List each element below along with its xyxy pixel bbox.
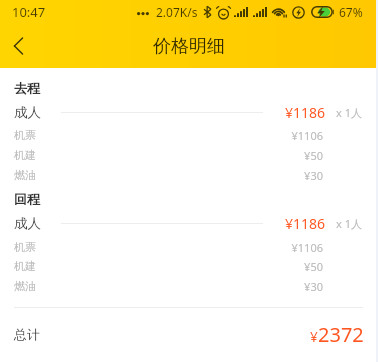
staticText: ¥1186: [285, 214, 326, 233]
staticText: x 1人: [336, 105, 362, 120]
staticText: 机票: [14, 128, 36, 142]
staticText: 燃油: [14, 279, 36, 293]
staticText: 燃油: [14, 168, 36, 182]
staticText: ¥30: [263, 279, 323, 294]
staticText: 67%: [339, 4, 363, 20]
staticText: x 1人: [336, 216, 362, 231]
staticText: 10:47: [12, 3, 46, 21]
staticText: 回程: [14, 191, 40, 207]
staticText: ¥50: [263, 259, 323, 274]
staticText: ¥1106: [263, 240, 323, 255]
staticText: 2372: [318, 321, 364, 347]
staticText: ¥50: [263, 148, 323, 163]
staticText: 机建: [14, 148, 36, 162]
staticText: 去程: [14, 80, 40, 96]
staticText: 机票: [14, 240, 36, 254]
staticText: ¥30: [263, 168, 323, 183]
staticText: 价格明细: [153, 35, 225, 58]
staticText: 成人: [14, 215, 41, 232]
staticText: ¥: [310, 328, 318, 346]
staticText: ¥1186: [285, 103, 326, 122]
staticText: ¥1106: [263, 128, 323, 143]
staticText: 成人: [14, 104, 41, 121]
staticText: 总计: [14, 326, 40, 342]
staticText: 机建: [14, 259, 36, 273]
staticText: 2.07K/s: [156, 4, 198, 20]
button[interactable]: Back: [0, 26, 40, 66]
